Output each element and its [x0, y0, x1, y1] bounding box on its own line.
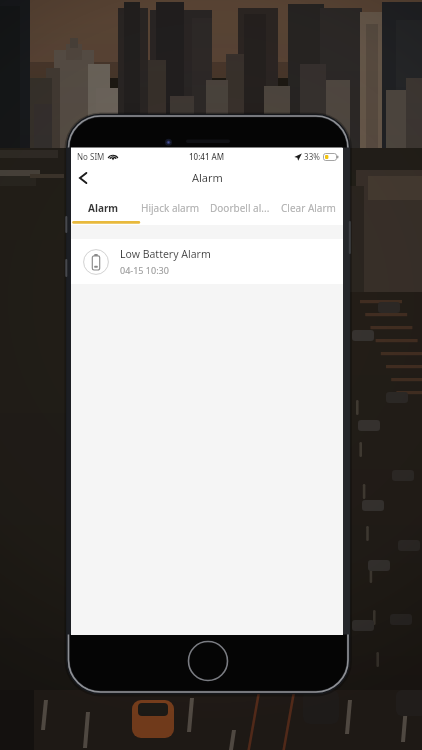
- staticText: 10:41 AM: [189, 151, 225, 162]
- staticText: Clear Alarm: [281, 201, 336, 215]
- button[interactable]: Doorbell al...: [205, 191, 274, 224]
- button[interactable]: Clear Alarm: [274, 191, 343, 224]
- staticText: Alarm: [88, 201, 119, 215]
- staticText: No SIM: [77, 151, 105, 162]
- button[interactable]: Low Battery Alarm: [71, 239, 343, 284]
- staticText: Doorbell al...: [210, 201, 270, 215]
- button[interactable]: Back: [71, 165, 95, 191]
- staticText: Low Battery Alarm: [120, 247, 211, 261]
- staticText: 04-15 10:30: [120, 264, 169, 276]
- staticText: Hijack alarm: [141, 201, 200, 215]
- button[interactable]: Hijack alarm: [136, 191, 205, 224]
- button[interactable]: Alarm: [71, 191, 136, 224]
- staticText: 33%: [302, 151, 320, 162]
- staticText: Alarm: [192, 170, 223, 185]
